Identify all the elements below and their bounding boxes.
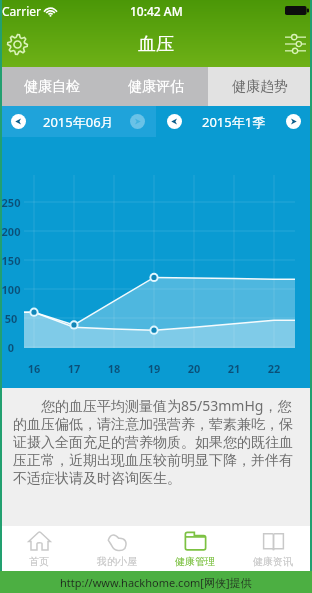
staticText: 健康自检 <box>24 78 80 96</box>
button[interactable]: 首页 <box>0 526 78 571</box>
staticText: 2015年06月 <box>43 113 114 131</box>
staticText: 200 <box>0 224 22 239</box>
button[interactable]: Filter settings <box>278 21 312 67</box>
staticText: 健康评估 <box>128 78 184 96</box>
staticText: 首页 <box>29 555 49 568</box>
staticText: 100 <box>0 282 22 297</box>
staticText: 16 <box>23 361 45 376</box>
button[interactable]: 健康趋势 <box>208 67 312 106</box>
staticText: 17 <box>63 361 85 376</box>
button[interactable]: Next period <box>130 114 145 129</box>
staticText: 18 <box>103 361 125 376</box>
staticText: 10:42 AM <box>130 3 183 19</box>
staticText: 健康资讯 <box>253 555 293 568</box>
staticText: 250 <box>0 195 22 210</box>
staticText: 健康趋势 <box>232 78 288 96</box>
button[interactable]: 健康自检 <box>0 67 104 106</box>
staticText: 您的血压平均测量值为85/53mmHg，您的血压偏低，请注意加强营养，荤素兼吃，… <box>13 396 300 488</box>
staticText: 50 <box>0 311 22 326</box>
button[interactable]: Previous period <box>167 114 182 129</box>
staticText: 我的小屋 <box>97 555 137 568</box>
staticText: 血压 <box>138 33 174 56</box>
button[interactable]: 健康管理 <box>156 526 234 571</box>
staticText: Carrier <box>2 3 42 19</box>
staticText: 0 <box>0 340 22 355</box>
button[interactable]: Next period <box>286 114 301 129</box>
staticText: 健康管理 <box>175 555 215 568</box>
button[interactable]: Settings <box>0 21 34 67</box>
staticText: 2015年1季 <box>202 113 266 131</box>
button[interactable]: 健康资讯 <box>234 526 312 571</box>
button[interactable]: 我的小屋 <box>78 526 156 571</box>
staticText: 19 <box>143 361 165 376</box>
staticText: 150 <box>0 253 22 268</box>
button[interactable]: 健康评估 <box>104 67 208 106</box>
staticText: 20 <box>183 361 205 376</box>
staticText: http://www.hackhome.com[网侠]提供 <box>60 575 252 590</box>
staticText: 21 <box>223 361 245 376</box>
button[interactable]: Previous period <box>11 114 26 129</box>
staticText: 22 <box>263 361 285 376</box>
